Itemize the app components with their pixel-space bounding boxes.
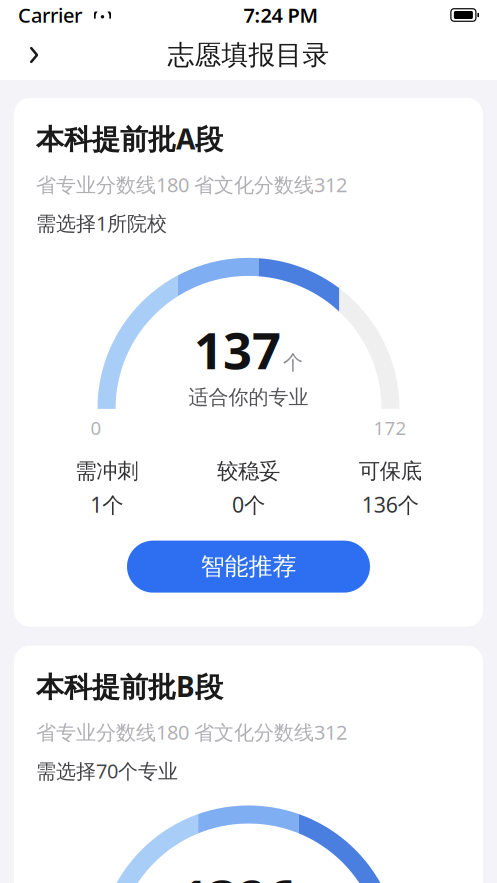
staticText: 1326 <box>179 863 295 883</box>
staticText: 个 <box>283 350 303 375</box>
staticText: 本科提前批A段 <box>36 120 223 157</box>
staticText: 172 <box>373 415 406 440</box>
staticText: 1个 <box>90 490 123 519</box>
button[interactable]: Back <box>12 33 56 77</box>
staticText: 137 <box>194 316 281 383</box>
staticText: 智能推荐 <box>200 552 296 581</box>
staticText: 0个 <box>232 490 265 519</box>
staticText: 0 <box>90 415 101 440</box>
staticText: 本科提前批B段 <box>36 668 223 705</box>
staticText: 136个 <box>362 490 419 519</box>
staticText: 需冲刺 <box>75 458 138 484</box>
staticText: 省专业分数线180 省文化分数线312 <box>36 719 347 745</box>
staticText: 省专业分数线180 省文化分数线312 <box>36 171 347 198</box>
button[interactable]: 智能推荐 <box>127 541 370 593</box>
staticText: 7:24 PM <box>243 2 318 28</box>
staticText: Carrier <box>18 2 82 28</box>
staticText: 需选择70个专业 <box>36 757 178 784</box>
staticText: 可保底 <box>359 458 422 484</box>
staticText: 适合你的专业 <box>188 385 308 410</box>
staticText: 需选择1所院校 <box>36 210 167 236</box>
staticText: 志愿填报目录 <box>167 39 329 71</box>
staticText: 较稳妥 <box>217 458 280 484</box>
